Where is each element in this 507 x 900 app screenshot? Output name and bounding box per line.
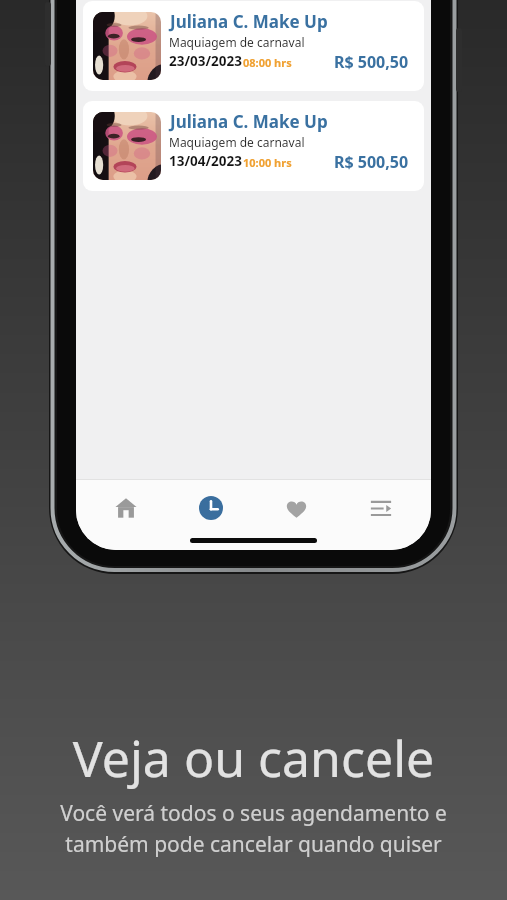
button[interactable] — [114, 496, 138, 520]
button[interactable] — [369, 496, 393, 520]
staticText: Juliana C. Make Up — [170, 110, 328, 133]
button[interactable]: Juliana C. Make Up — [83, 101, 424, 191]
staticText: R$ 500,50 — [334, 51, 409, 73]
staticText: Maquiagem de carnaval — [169, 134, 305, 150]
staticText: Veja ou cancele — [0, 724, 507, 792]
staticText: 08:00 hrs — [243, 55, 292, 70]
staticText: 13/04/2023 — [169, 152, 242, 170]
staticText: R$ 500,50 — [334, 151, 409, 173]
staticText: Juliana C. Make Up — [170, 10, 328, 33]
staticText: 10:00 hrs — [243, 155, 292, 170]
staticText: 23/03/2023 — [169, 52, 242, 70]
staticText: Maquiagem de carnaval — [169, 34, 305, 50]
button[interactable] — [284, 496, 308, 520]
button[interactable] — [199, 496, 223, 520]
button[interactable]: Juliana C. Make Up — [83, 1, 424, 91]
staticText: Você verá todos o seus agendamento e tam… — [0, 799, 507, 858]
